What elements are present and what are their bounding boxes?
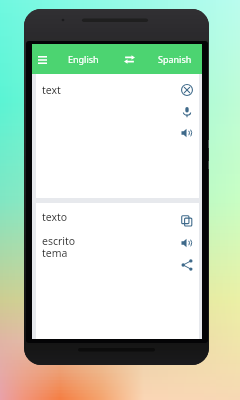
staticText: escrito [42,234,76,248]
button[interactable]: English [60,44,107,74]
staticText: text [42,83,61,97]
button[interactable]: Share [180,258,194,272]
button[interactable]: Swap languages [120,50,139,69]
button[interactable]: Menu [33,50,52,69]
button[interactable]: Listen [180,126,194,140]
staticText: English [68,53,99,65]
button[interactable]: Listen [180,236,194,250]
button[interactable]: Voice input [180,105,194,119]
staticText: tema [42,246,68,260]
staticText: Spanish [158,53,192,65]
staticText: texto [42,210,68,224]
button[interactable]: Clear text [180,83,194,97]
button[interactable]: Copy [180,214,194,228]
button[interactable]: Spanish [151,44,198,74]
